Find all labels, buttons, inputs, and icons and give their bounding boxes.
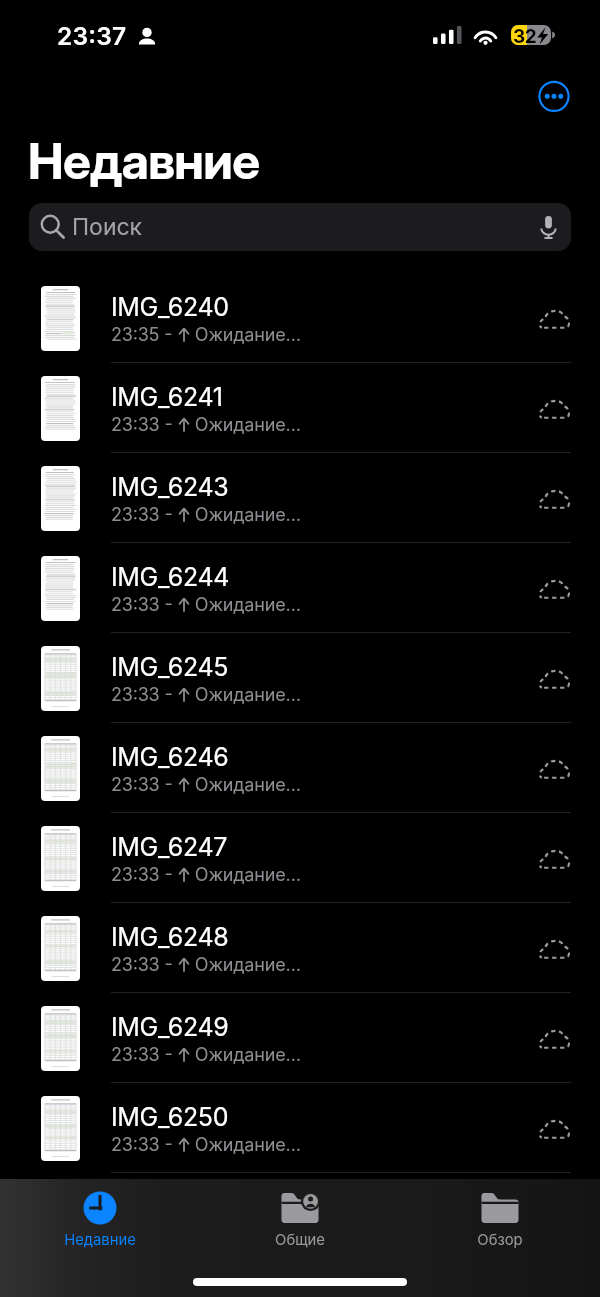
staticText: 23:33 - bbox=[111, 1134, 178, 1156]
staticText: Ожидание… bbox=[190, 1134, 301, 1156]
staticText: Ожидание… bbox=[190, 1044, 301, 1066]
staticText: IMG_6250 bbox=[111, 1102, 229, 1132]
staticText: IMG_6243 bbox=[111, 472, 229, 502]
button[interactable]: IMG_6241 bbox=[0, 363, 600, 453]
staticText: 23:33 - bbox=[111, 954, 178, 976]
staticText: 23:33 - bbox=[111, 504, 178, 526]
button[interactable]: IMG_6246 bbox=[0, 723, 600, 813]
staticText: 23:35 - bbox=[111, 324, 178, 346]
staticText: Ожидание… bbox=[190, 324, 301, 346]
staticText: 23:33 - bbox=[111, 1044, 178, 1066]
button[interactable]: Общие bbox=[200, 1179, 400, 1257]
staticText: IMG_6240 bbox=[111, 292, 229, 322]
staticText: Ожидание… bbox=[190, 504, 301, 526]
staticText: Ожидание… bbox=[190, 864, 301, 886]
button[interactable]: IMG_6248 bbox=[0, 903, 600, 993]
staticText: 23:33 - bbox=[111, 864, 178, 886]
staticText: 23:33 - bbox=[111, 594, 178, 616]
staticText: IMG_6245 bbox=[111, 652, 229, 682]
button[interactable]: IMG_6244 bbox=[0, 543, 600, 633]
staticText: IMG_6246 bbox=[111, 742, 229, 772]
staticText: Ожидание… bbox=[190, 414, 301, 436]
staticText: 23:37 bbox=[57, 21, 127, 51]
button[interactable]: IMG_6249 bbox=[0, 993, 600, 1083]
staticText: IMG_6249 bbox=[111, 1012, 229, 1042]
staticText: IMG_6241 bbox=[111, 382, 223, 412]
button[interactable]: IMG_6247 bbox=[0, 813, 600, 903]
staticText: 23:33 - bbox=[111, 414, 178, 436]
staticText: Ожидание… bbox=[190, 684, 301, 706]
staticText: Общие bbox=[275, 1231, 325, 1249]
staticText: 23:33 - bbox=[111, 774, 178, 796]
button[interactable]: More options bbox=[536, 78, 572, 114]
staticText: Поиск bbox=[72, 213, 143, 241]
staticText: Обзор bbox=[477, 1231, 523, 1249]
staticText: Недавние bbox=[28, 131, 260, 191]
staticText: IMG_6247 bbox=[111, 832, 228, 862]
staticText: Ожидание… bbox=[190, 774, 301, 796]
staticText: Ожидание… bbox=[190, 954, 301, 976]
button[interactable]: IMG_6245 bbox=[0, 633, 600, 723]
button[interactable]: IMG_6243 bbox=[0, 453, 600, 543]
button[interactable]: Обзор bbox=[400, 1179, 600, 1257]
button[interactable]: Недавние bbox=[0, 1179, 200, 1257]
button[interactable]: IMG_6250 bbox=[0, 1083, 600, 1173]
staticText: Недавние bbox=[64, 1231, 136, 1249]
staticText: 23:33 - bbox=[111, 684, 178, 706]
button[interactable]: Поиск bbox=[29, 203, 571, 251]
staticText: Ожидание… bbox=[190, 594, 301, 616]
button[interactable]: IMG_6240 bbox=[0, 273, 600, 363]
staticText: 32 bbox=[513, 25, 537, 45]
staticText: IMG_6248 bbox=[111, 922, 229, 952]
staticText: IMG_6244 bbox=[111, 562, 230, 592]
